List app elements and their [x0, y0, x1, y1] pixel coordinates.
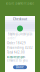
staticText: Order 18429	[7, 41, 26, 45]
staticText: Visa ending 4242	[7, 46, 33, 49]
button[interactable]: View receipt	[7, 56, 33, 59]
staticText: Total $42.00	[7, 51, 25, 54]
staticText: A receipt was emailed to you	[7, 55, 28, 62]
staticText: View receipt	[7, 55, 24, 59]
staticText: Done	[16, 65, 24, 69]
staticText: Thank you for your order	[7, 33, 32, 40]
staticText: Payment complete	[7, 32, 32, 35]
staticText: Checkout	[13, 17, 27, 21]
staticText: Secure payment page	[5, 2, 34, 5]
button[interactable]: Done	[13, 65, 27, 69]
